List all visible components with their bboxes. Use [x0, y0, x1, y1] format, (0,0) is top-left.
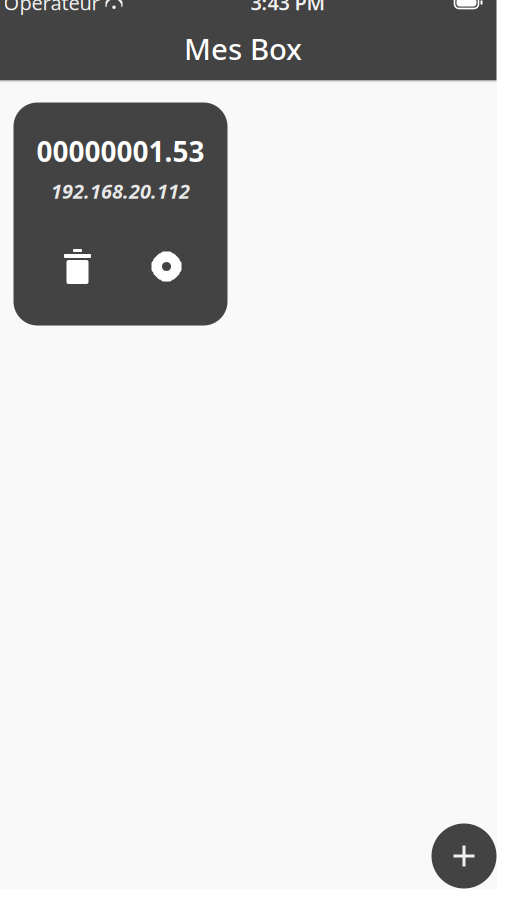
staticText: Mes Box [184, 29, 302, 68]
staticText: Opérateur [3, 0, 99, 16]
button[interactable]: Réglages [143, 243, 189, 289]
staticText: 00000001.53 [36, 132, 204, 170]
button[interactable]: 00000001.53 [13, 102, 227, 325]
button[interactable]: Supprimer [54, 243, 100, 289]
staticText: 192.168.20.112 [51, 178, 190, 204]
staticText: 3:43 PM [250, 0, 325, 16]
button[interactable]: Ajouter une box [431, 823, 496, 888]
